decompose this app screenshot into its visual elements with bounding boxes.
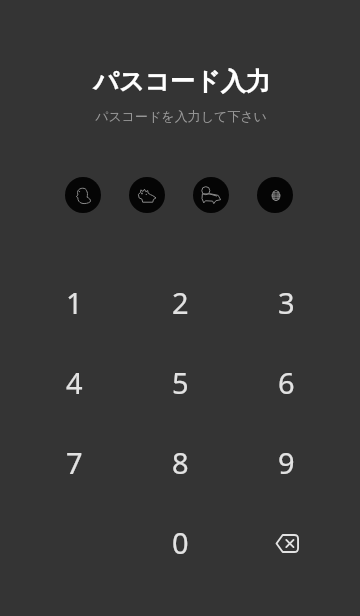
staticText: 0 bbox=[172, 523, 189, 562]
staticText: 6 bbox=[278, 363, 295, 402]
button[interactable]: 7 bbox=[21, 422, 127, 502]
staticText: パスコード入力 bbox=[2, 66, 360, 97]
staticText: 2 bbox=[172, 283, 189, 322]
staticText: 5 bbox=[172, 363, 189, 402]
staticText: 4 bbox=[66, 363, 83, 402]
button[interactable]: 4 bbox=[21, 342, 127, 422]
staticText: 7 bbox=[66, 443, 83, 482]
button[interactable]: Backspace bbox=[233, 502, 339, 582]
button[interactable]: 8 bbox=[127, 422, 233, 502]
button[interactable]: 2 bbox=[127, 262, 233, 342]
button[interactable]: 3 bbox=[233, 262, 339, 342]
button[interactable]: 9 bbox=[233, 422, 339, 502]
button[interactable]: 1 bbox=[21, 262, 127, 342]
button[interactable]: 5 bbox=[127, 342, 233, 422]
staticText: パスコードを入力して下さい bbox=[1, 108, 360, 124]
button[interactable]: 0 bbox=[127, 502, 233, 582]
staticText: 9 bbox=[278, 443, 295, 482]
staticText: 8 bbox=[172, 443, 189, 482]
staticText: 1 bbox=[66, 283, 83, 322]
staticText: 3 bbox=[278, 283, 295, 322]
button[interactable]: 6 bbox=[233, 342, 339, 422]
